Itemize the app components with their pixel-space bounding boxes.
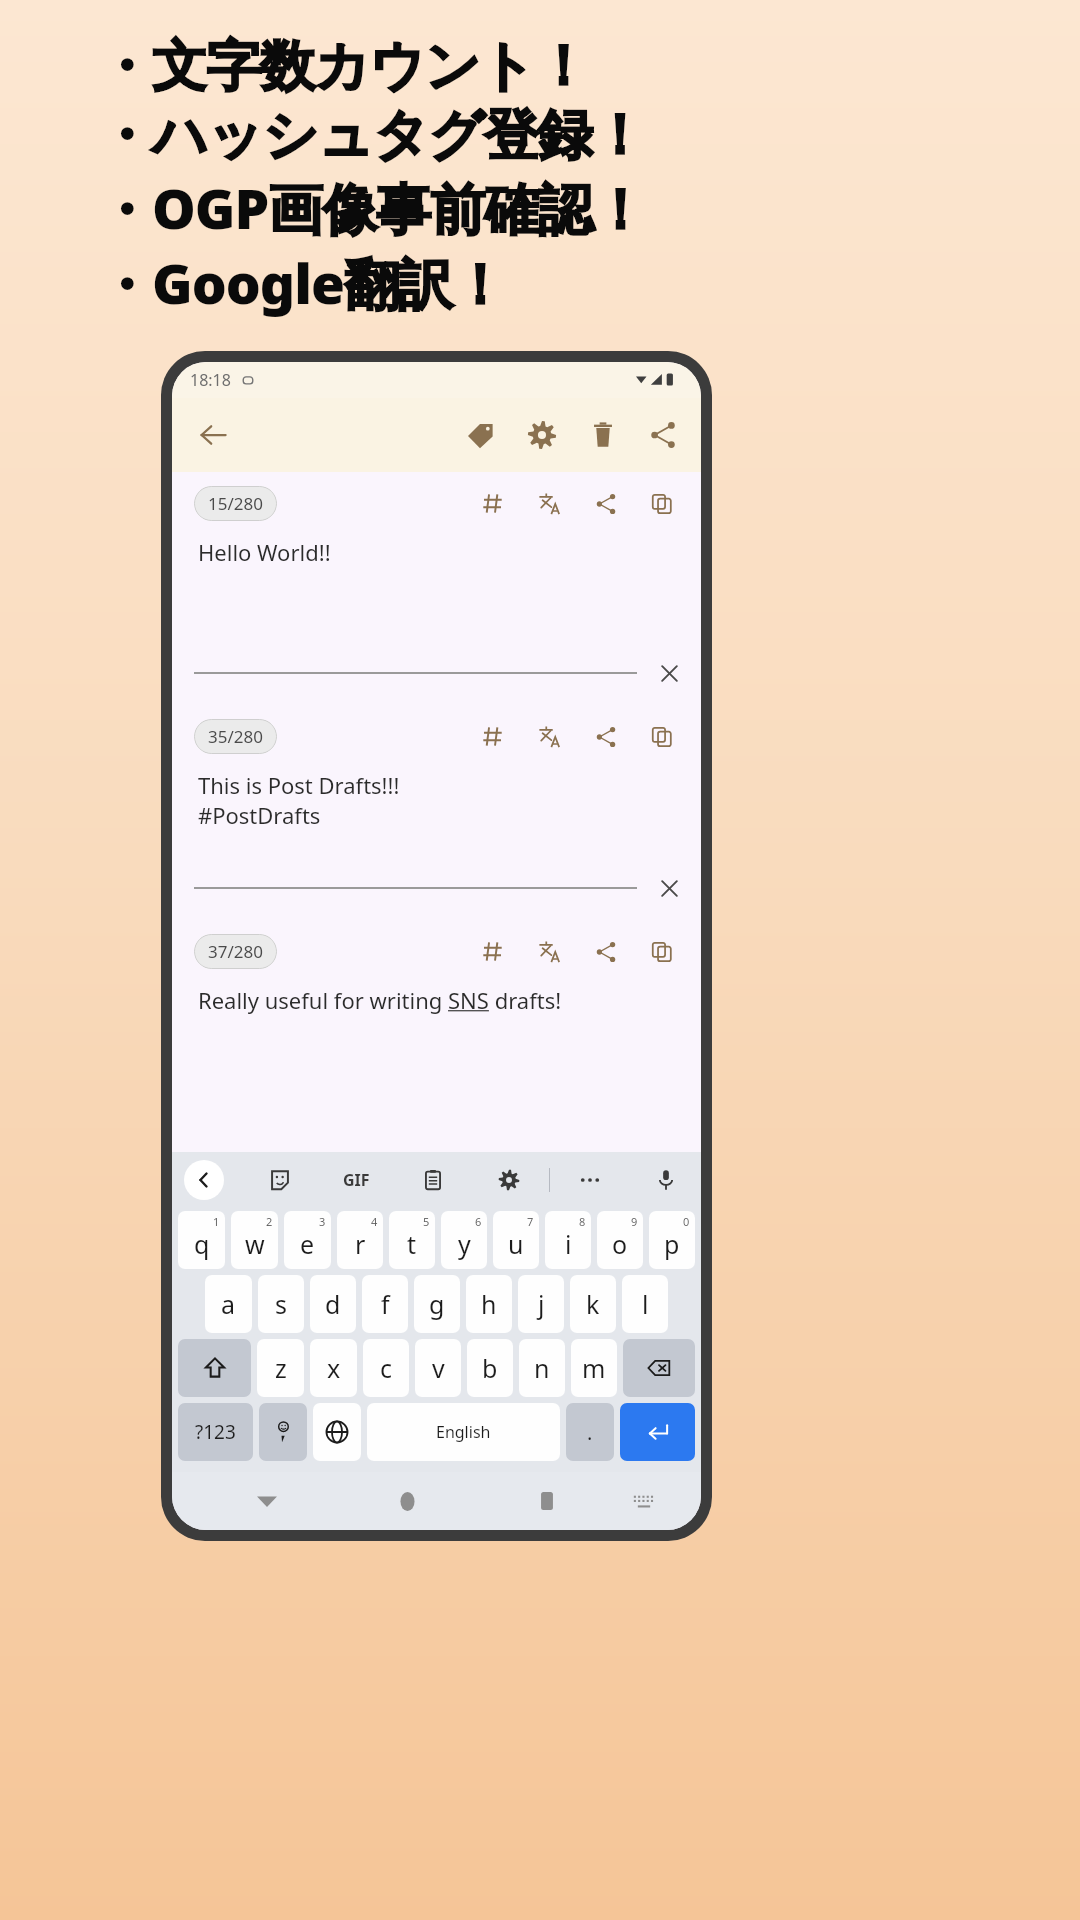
button[interactable]: Hashtag xyxy=(473,932,512,971)
button[interactable]: Copy xyxy=(643,933,681,971)
button[interactable]: Hashtag xyxy=(473,717,512,756)
button[interactable]: n xyxy=(519,1339,565,1397)
button[interactable]: Change language xyxy=(313,1403,361,1461)
button[interactable]: 6 xyxy=(441,1211,487,1269)
staticText: ・OGP画像事前確認！ xyxy=(98,170,647,245)
staticText: 8 xyxy=(579,1214,586,1229)
button[interactable]: Remove draft xyxy=(649,653,689,693)
staticText: p xyxy=(664,1227,680,1261)
button[interactable]: Keyboard settings xyxy=(490,1161,528,1199)
button[interactable]: 2 xyxy=(231,1211,278,1269)
button[interactable]: m xyxy=(571,1339,617,1397)
button[interactable]: f xyxy=(362,1275,408,1333)
staticText: 2 xyxy=(266,1214,273,1229)
button[interactable]: c xyxy=(363,1339,409,1397)
button[interactable]: 15/280 xyxy=(194,486,277,521)
button[interactable]: Share xyxy=(587,718,625,756)
button[interactable]: 37/280 xyxy=(194,934,277,969)
button[interactable]: GIF xyxy=(337,1163,376,1197)
staticText: ・Google翻訳！ xyxy=(98,245,506,320)
staticText: Hello World!! xyxy=(198,537,331,567)
staticText: 5 xyxy=(423,1214,430,1229)
button[interactable]: Copy xyxy=(643,485,681,523)
button[interactable]: 35/280 xyxy=(194,719,277,754)
staticText: English xyxy=(436,1421,491,1443)
button[interactable]: English xyxy=(367,1403,560,1461)
button[interactable]: 5 xyxy=(389,1211,435,1269)
button[interactable]: 1 xyxy=(178,1211,225,1269)
staticText: 6 xyxy=(475,1214,482,1229)
button[interactable]: 9 xyxy=(597,1211,643,1269)
button[interactable]: Recent apps xyxy=(526,1480,568,1522)
button[interactable]: 4 xyxy=(337,1211,383,1269)
button[interactable]: Collapse toolbar xyxy=(184,1160,224,1200)
staticText: g xyxy=(429,1287,445,1321)
button[interactable]: 8 xyxy=(545,1211,591,1269)
button[interactable]: x xyxy=(310,1339,357,1397)
staticText: ・文字数カウント！ xyxy=(98,32,590,101)
button[interactable]: Share xyxy=(587,485,625,523)
staticText: u xyxy=(508,1227,524,1261)
staticText: i xyxy=(565,1227,572,1261)
button[interactable]: Share xyxy=(641,413,685,457)
button[interactable]: . xyxy=(566,1403,614,1461)
staticText: b xyxy=(482,1351,498,1385)
staticText: This is Post Drafts!!! xyxy=(198,770,400,800)
button[interactable]: Translate xyxy=(530,484,569,523)
button[interactable]: Backspace xyxy=(623,1339,695,1397)
button[interactable]: a xyxy=(205,1275,252,1333)
staticText: ・ハッシュタグ登録！ xyxy=(98,101,646,170)
button[interactable]: j xyxy=(518,1275,564,1333)
staticText: r xyxy=(355,1227,366,1261)
staticText: 9 xyxy=(631,1214,638,1229)
button[interactable]: Stickers xyxy=(261,1161,299,1199)
button[interactable]: Hashtag xyxy=(473,484,512,523)
staticText: c xyxy=(380,1351,393,1385)
button[interactable]: ?123 xyxy=(178,1403,253,1461)
button[interactable]: Back xyxy=(190,412,236,458)
button[interactable]: l xyxy=(622,1275,668,1333)
button[interactable]: Delete xyxy=(581,413,625,457)
button[interactable]: b xyxy=(467,1339,513,1397)
button[interactable]: 3 xyxy=(284,1211,331,1269)
button[interactable]: Switch input method xyxy=(623,1480,665,1522)
button[interactable]: Translate xyxy=(530,932,569,971)
button[interactable]: Voice input xyxy=(647,1161,685,1199)
staticText: q xyxy=(194,1227,210,1261)
button[interactable]: k xyxy=(570,1275,616,1333)
button[interactable]: Home xyxy=(386,1480,428,1522)
button[interactable]: Enter xyxy=(620,1403,695,1461)
button[interactable]: Tags xyxy=(457,412,503,458)
button[interactable]: Settings xyxy=(519,412,565,458)
button[interactable]: Shift xyxy=(178,1339,251,1397)
staticText: w xyxy=(245,1227,265,1261)
button[interactable]: z xyxy=(257,1339,304,1397)
button[interactable]: Copy xyxy=(643,718,681,756)
button[interactable]: v xyxy=(415,1339,461,1397)
button[interactable]: d xyxy=(310,1275,356,1333)
button[interactable]: s xyxy=(258,1275,304,1333)
staticText: 3 xyxy=(319,1214,326,1229)
staticText: 18:18 xyxy=(190,369,231,391)
button[interactable]: Emoji and comma xyxy=(259,1403,307,1461)
staticText: ?123 xyxy=(195,1419,236,1445)
button[interactable]: Translate xyxy=(530,717,569,756)
button[interactable]: Hide keyboard xyxy=(246,1480,288,1522)
staticText: Really useful for writing SNS drafts! xyxy=(198,985,562,1015)
staticText: 0 xyxy=(683,1214,690,1229)
staticText: o xyxy=(612,1227,628,1261)
staticText: a xyxy=(221,1287,236,1321)
staticText: 4 xyxy=(371,1214,378,1229)
button[interactable]: Remove draft xyxy=(649,868,689,908)
staticText: 15/280 xyxy=(208,492,263,515)
button[interactable]: h xyxy=(466,1275,512,1333)
staticText: y xyxy=(458,1227,471,1261)
button[interactable]: 0 xyxy=(649,1211,695,1269)
button[interactable]: More options xyxy=(571,1161,609,1199)
button[interactable]: g xyxy=(414,1275,460,1333)
button[interactable]: 7 xyxy=(493,1211,539,1269)
button[interactable]: Share xyxy=(587,933,625,971)
staticText: 7 xyxy=(527,1214,534,1229)
staticText: #PostDrafts xyxy=(198,800,321,830)
button[interactable]: Clipboard xyxy=(414,1161,452,1199)
